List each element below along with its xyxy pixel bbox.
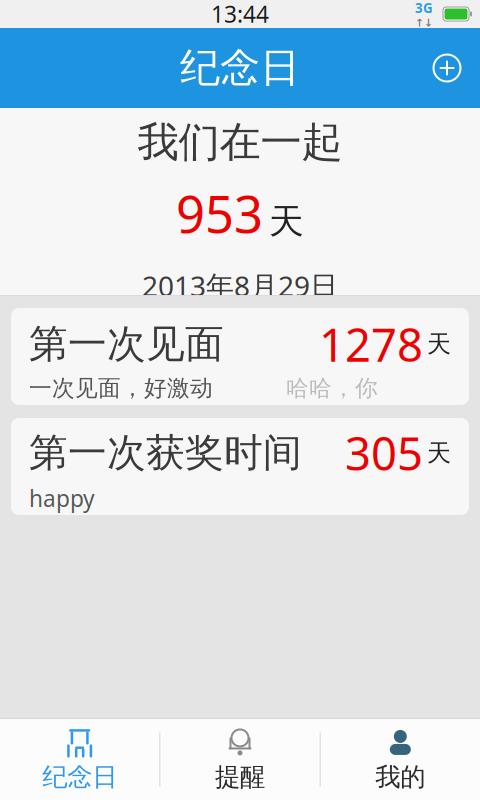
staticText: 哈哈，你: [286, 374, 378, 402]
button[interactable]: 我的: [321, 718, 480, 800]
staticText: 2013年8月29日: [142, 267, 338, 304]
staticText: happy: [29, 483, 95, 513]
staticText: 我的: [375, 761, 425, 792]
staticText: 纪念日: [42, 761, 117, 792]
staticText: 纪念日: [180, 43, 300, 92]
button[interactable]: 第一次见面: [11, 308, 469, 405]
staticText: 305: [345, 423, 423, 483]
staticText: 13:44: [211, 0, 269, 29]
button[interactable]: 提醒: [160, 718, 320, 800]
button[interactable]: 第一次获奖时间: [11, 418, 469, 515]
staticText: 3G: [415, 0, 433, 17]
staticText: 953: [176, 180, 263, 247]
staticText: 天: [269, 200, 304, 243]
staticText: 天: [427, 438, 451, 468]
button[interactable]: ⌂: [0, 718, 159, 800]
staticText: 我们在一起: [137, 117, 342, 168]
staticText: 天: [427, 329, 451, 359]
staticText: 1278: [319, 314, 423, 374]
staticText: 一次见面，好激动: [29, 374, 213, 402]
staticText: 第一次获奖时间: [29, 429, 302, 477]
staticText: ↑↓: [415, 17, 433, 29]
staticText: 提醒: [215, 761, 265, 792]
staticText: 第一次见面: [29, 320, 224, 368]
button[interactable]: 添加纪念日: [425, 46, 469, 90]
